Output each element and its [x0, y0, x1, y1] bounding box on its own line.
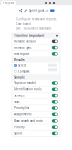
button[interactable]: More: [53, 2, 55, 4]
staticText: Results: [14, 58, 24, 62]
button[interactable]: Stats: [12, 99, 60, 105]
staticText: Select: [18, 64, 26, 67]
button[interactable]: Base search and note: [12, 118, 60, 124]
staticText: Projects: [3, 1, 14, 5]
button[interactable]: Notifications: [49, 2, 51, 4]
staticText: Sample: [14, 76, 25, 79]
staticText: Remote Sync: [14, 46, 31, 49]
staticText: Services: [14, 94, 24, 97]
staticText: Base search and note: [14, 119, 43, 123]
button[interactable]: Account: [45, 2, 47, 4]
staticText: Case based: [16, 22, 31, 26]
staticText: Compare: [18, 70, 30, 73]
staticText: Identification tools: [14, 87, 41, 91]
staticText: First report: [14, 52, 29, 56]
button[interactable]: Priority: [12, 124, 60, 130]
button[interactable]: Share project: [50, 9, 54, 12]
staticText: Configure teams and reports: [16, 17, 56, 21]
staticText: Stats: [14, 100, 19, 103]
button[interactable]: Section options: [56, 35, 58, 37]
staticText: Priority list: [14, 106, 29, 110]
button[interactable]: Edit: [24, 9, 27, 12]
staticText: Site · Document standards: [16, 27, 51, 30]
staticText: Timeline Important: [14, 34, 44, 37]
button[interactable]: Topics or model: [12, 80, 60, 86]
button[interactable]: Sprint: [12, 130, 60, 136]
staticText: Priority: [14, 125, 24, 129]
button[interactable]: First report: [12, 51, 60, 57]
button[interactable]: Remote version: [12, 38, 60, 44]
staticText: Sprint goals ▾: [29, 9, 46, 12]
button[interactable]: Identification tools: [12, 86, 60, 92]
button[interactable]: Compare: [12, 68, 60, 74]
button[interactable]: Select: [12, 63, 60, 68]
staticText: Topics or model: [14, 81, 36, 85]
button[interactable]: Share: [19, 9, 22, 12]
staticText: Remote version: [14, 40, 36, 43]
button[interactable]: Services: [12, 93, 60, 98]
button[interactable]: Priority list: [12, 105, 60, 111]
staticText: Assignments: [14, 112, 31, 116]
button[interactable]: Remote Sync: [12, 45, 60, 50]
staticText: Sprint: [14, 132, 22, 135]
button[interactable]: Assignments: [12, 111, 60, 117]
button[interactable]: Projects: [1, 1, 16, 5]
button[interactable]: Members: [46, 10, 48, 12]
button[interactable]: Sprint goals ▾: [29, 9, 46, 13]
